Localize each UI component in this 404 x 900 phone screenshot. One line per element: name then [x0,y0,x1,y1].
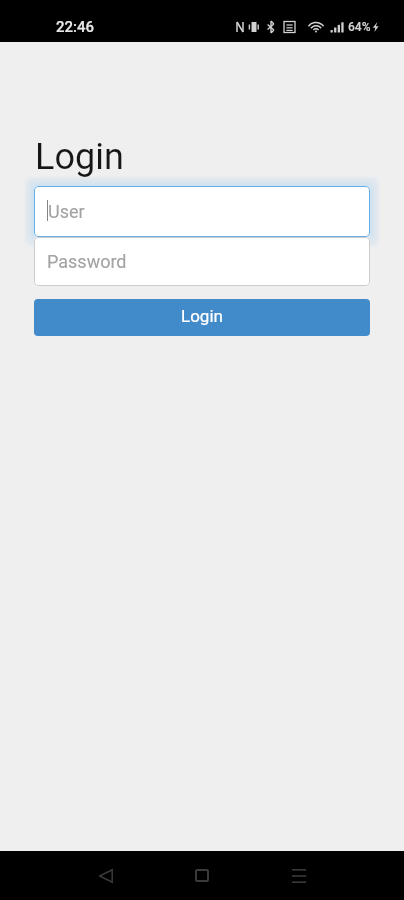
staticText: 64% [348,20,371,34]
staticText: 22:46 [56,18,95,36]
button[interactable]: Login [34,299,370,336]
staticText: Password [47,251,127,272]
staticText: Login [35,136,124,178]
button[interactable]: Home [154,851,250,900]
button[interactable]: User [34,186,370,237]
staticText: User [48,201,85,222]
button[interactable]: Password [34,237,370,286]
staticText: Login [181,306,223,326]
button[interactable]: Back [58,851,154,900]
button[interactable]: Recent apps [251,851,347,900]
